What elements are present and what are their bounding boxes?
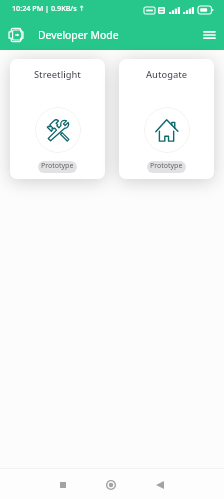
staticText: Autogate xyxy=(146,68,188,81)
staticText: Streetlight xyxy=(34,68,81,81)
button[interactable]: Streetlight xyxy=(10,59,105,179)
button[interactable]: Recents xyxy=(49,471,77,499)
button[interactable]: Developer mode xyxy=(4,23,28,47)
staticText: 10:24 PM | 0.9KB/s ↑ xyxy=(12,3,85,13)
button[interactable]: Menu xyxy=(197,23,221,47)
button[interactable]: Autogate xyxy=(119,59,214,179)
staticText: Developer Mode xyxy=(38,28,119,42)
button[interactable]: Home xyxy=(97,471,125,499)
staticText: Prototype xyxy=(41,161,74,171)
staticText: Prototype xyxy=(150,161,183,171)
button[interactable]: Back xyxy=(146,471,174,499)
